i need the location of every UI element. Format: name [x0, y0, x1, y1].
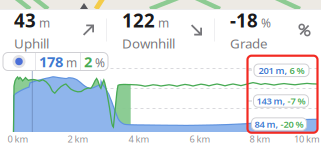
staticText: % [261, 15, 271, 31]
staticText: -7 % [287, 95, 305, 107]
staticText: % [95, 55, 105, 70]
staticText: 2 [84, 52, 92, 71]
staticText: -20 % [280, 118, 303, 130]
staticText: 84 m, [254, 118, 280, 130]
staticText: 8 km [249, 133, 270, 145]
button[interactable]: 178 [3, 52, 108, 70]
button[interactable]: 84 m, [251, 118, 306, 130]
staticText: 4 km [128, 133, 149, 145]
staticText: 143 m, [256, 95, 287, 107]
staticText: m [158, 15, 169, 31]
staticText: -18 [230, 8, 258, 33]
button[interactable]: 43 [0, 13, 106, 47]
staticText: 6 km [189, 133, 210, 145]
staticText: Downhill [122, 34, 175, 52]
staticText: 201 m, [258, 64, 289, 76]
staticText: 10 km [294, 133, 320, 145]
staticText: m [66, 55, 77, 70]
button[interactable]: 122 [107, 13, 214, 47]
button[interactable]: 201 m, [254, 64, 309, 76]
staticText: 43 [14, 8, 36, 33]
staticText: Grade [230, 34, 268, 52]
staticText: 6 % [289, 64, 304, 76]
staticText: Uphill [14, 34, 49, 52]
staticText: 122 [122, 8, 155, 33]
button[interactable]: 143 m, [253, 95, 308, 107]
staticText: 0 km [7, 133, 28, 145]
staticText: m [39, 15, 50, 31]
staticText: 2 km [67, 133, 88, 145]
button[interactable]: -18 [215, 13, 321, 47]
staticText: 178 [39, 52, 63, 71]
